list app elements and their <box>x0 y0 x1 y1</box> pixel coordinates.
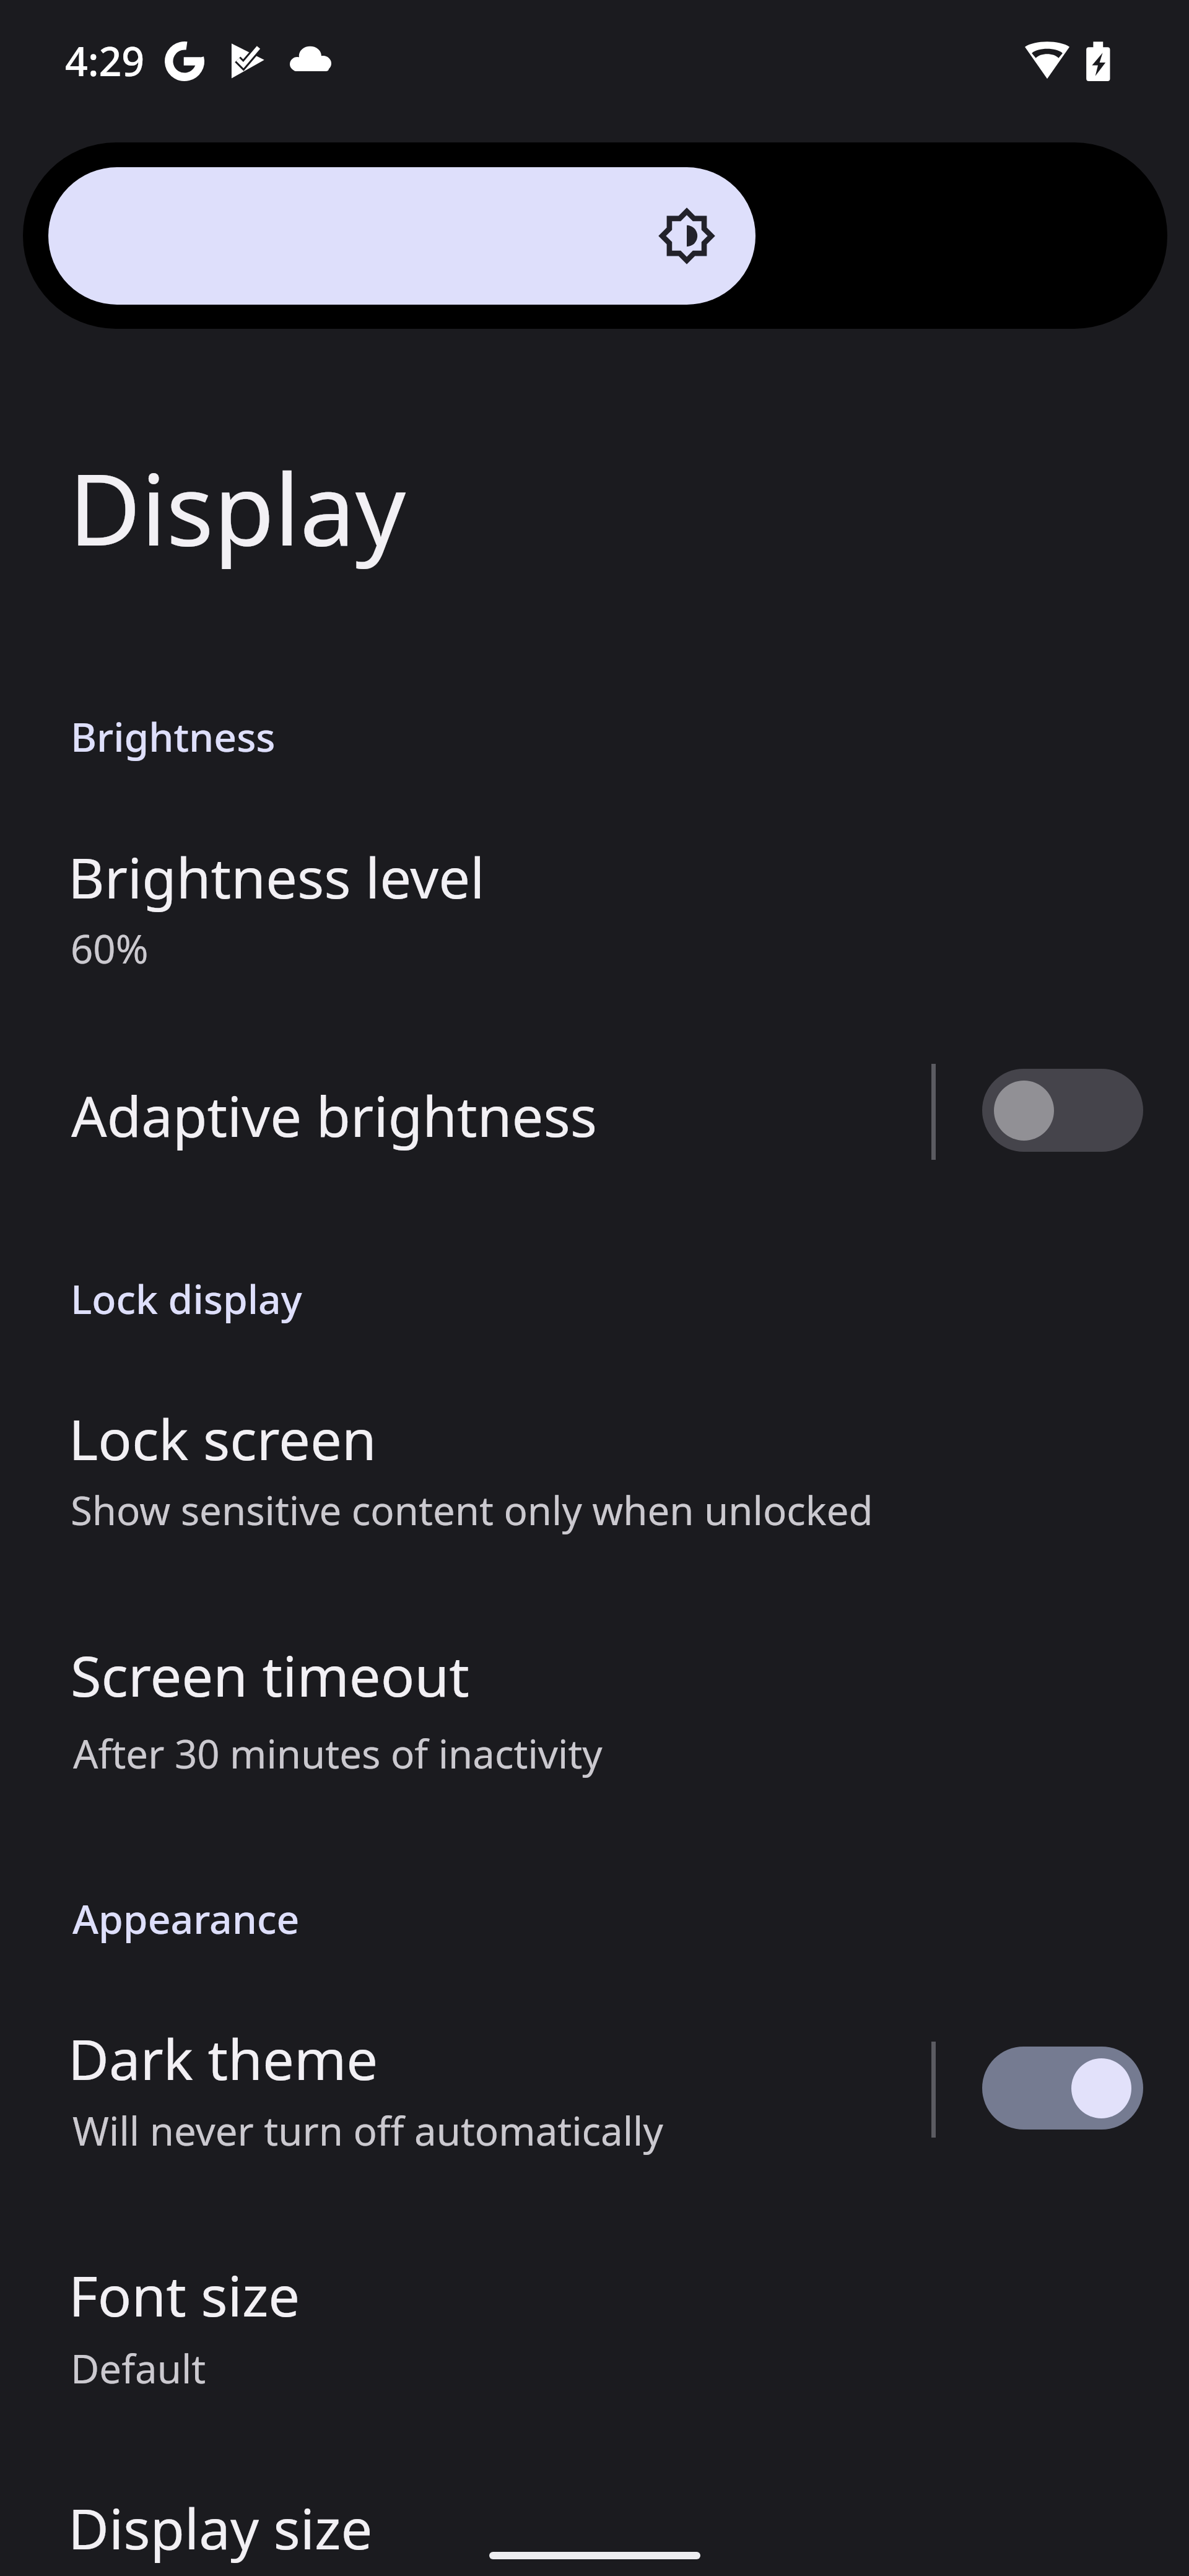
staticText: Screen timeout <box>71 1637 469 1713</box>
staticText: Font size <box>69 2256 300 2333</box>
button[interactable]: Display size <box>0 2461 1189 2576</box>
staticText: Display size <box>68 2489 373 2565</box>
staticText: Adaptive brightness <box>71 1077 597 1153</box>
staticText: Will never turn off automatically <box>72 2104 663 2157</box>
staticText: Dark theme <box>68 2020 378 2096</box>
button[interactable]: Brightness level <box>0 805 1189 1003</box>
button[interactable]: Dark theme <box>0 1988 1189 2186</box>
button[interactable]: Adaptive brightness <box>0 1040 1189 1189</box>
staticText: Brightness level <box>68 838 485 915</box>
staticText: Display <box>69 440 406 574</box>
button[interactable]: Brightness <box>23 142 1167 329</box>
staticText: Show sensitive content only when unlocke… <box>71 1483 873 1536</box>
button[interactable]: Dark theme <box>982 2047 1143 2130</box>
staticText: Lock screen <box>69 1400 377 1476</box>
staticText: 60% <box>71 921 149 975</box>
button[interactable]: Screen timeout <box>0 1610 1189 1808</box>
button[interactable]: Adaptive brightness <box>982 1069 1143 1152</box>
staticText: Lock display <box>71 1271 302 1325</box>
staticText: After 30 minutes of inactivity <box>73 1726 603 1780</box>
staticText: Default <box>71 2341 206 2395</box>
button[interactable]: Lock screen <box>0 1368 1189 1567</box>
staticText: Brightness <box>71 709 276 763</box>
button[interactable]: Font size <box>0 2229 1189 2427</box>
staticText: 4:29 <box>65 33 145 88</box>
staticText: Appearance <box>72 1891 300 1945</box>
